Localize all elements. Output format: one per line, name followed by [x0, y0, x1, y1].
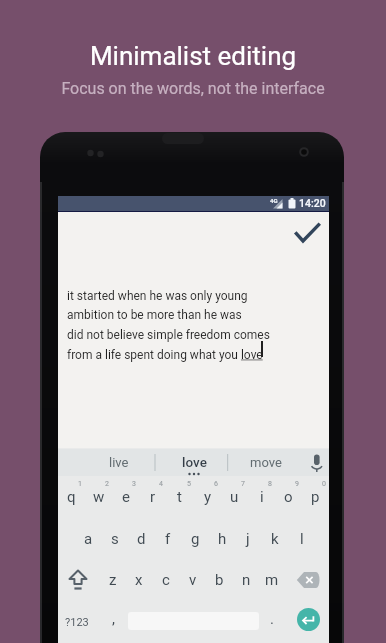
staticText: k [271, 530, 279, 548]
button[interactable]: n [233, 559, 259, 601]
staticText: d [137, 530, 146, 548]
button[interactable]: h [209, 518, 235, 560]
staticText: z [109, 571, 117, 589]
staticText: v [189, 571, 197, 589]
staticText: e [122, 488, 130, 506]
staticText: 6 [214, 480, 218, 488]
staticText: 1 [78, 480, 82, 488]
staticText: . [270, 610, 274, 628]
staticText: l [300, 530, 304, 548]
button[interactable]: j [235, 518, 261, 560]
button[interactable]: c [153, 559, 179, 601]
button[interactable]: z [100, 559, 126, 601]
staticText: 4G [270, 197, 278, 204]
staticText: q [67, 488, 76, 506]
button[interactable]: u [221, 476, 248, 518]
staticText: ?123 [65, 616, 89, 629]
button[interactable]: love [179, 451, 209, 473]
staticText: 7 [241, 480, 245, 488]
button[interactable]: m [259, 559, 285, 601]
staticText: r [150, 488, 156, 506]
button[interactable]: i [248, 476, 275, 518]
button[interactable]: d [128, 518, 154, 560]
staticText: 5 [187, 480, 191, 488]
button[interactable] [297, 608, 320, 631]
button[interactable]: q [58, 476, 85, 518]
button[interactable]: a [75, 518, 101, 560]
staticText: 8 [268, 480, 272, 488]
button[interactable]: e [112, 476, 139, 518]
staticText: 9 [295, 480, 299, 488]
button[interactable]: k [262, 518, 288, 560]
staticText: it started when he was only young ambiti… [67, 289, 270, 362]
staticText: b [215, 571, 224, 589]
button[interactable] [67, 569, 89, 591]
button[interactable]: ?123 [60, 611, 94, 633]
staticText: 3 [132, 480, 136, 488]
staticText: t [177, 488, 182, 506]
staticText: love [182, 454, 207, 470]
staticText: Minimalist editing [0, 41, 386, 71]
button[interactable]: f [155, 518, 181, 560]
button[interactable]: b [206, 559, 232, 601]
staticText: a [84, 530, 93, 548]
staticText: 4 [159, 480, 163, 488]
staticText: j [246, 530, 250, 548]
button[interactable]: s [102, 518, 128, 560]
staticText: u [230, 488, 239, 506]
button[interactable]: x [126, 559, 152, 601]
staticText: m [265, 571, 279, 589]
staticText: g [191, 530, 200, 548]
staticText: 2 [105, 480, 109, 488]
button[interactable]: v [180, 559, 206, 601]
button[interactable] [296, 571, 320, 589]
staticText: y [204, 488, 212, 506]
button[interactable]: t [166, 476, 193, 518]
button[interactable]: live [104, 451, 134, 473]
staticText: p [311, 488, 320, 506]
staticText: 0 [322, 480, 326, 488]
staticText: n [242, 571, 251, 589]
staticText: 14:20 [299, 197, 326, 209]
staticText: move [250, 455, 282, 470]
button[interactable]: , [103, 608, 123, 630]
staticText: live [109, 455, 129, 470]
button[interactable]: . [262, 608, 282, 630]
staticText: f [165, 530, 171, 548]
staticText: w [93, 488, 105, 506]
staticText: x [135, 571, 143, 589]
button[interactable]: p [302, 476, 329, 518]
staticText: h [218, 530, 227, 548]
button[interactable] [292, 220, 324, 244]
button[interactable]: o [275, 476, 302, 518]
button[interactable]: g [182, 518, 208, 560]
button[interactable]: r [139, 476, 166, 518]
button[interactable]: l [289, 518, 315, 560]
button[interactable]: move [244, 451, 288, 473]
staticText: Focus on the words, not the interface [0, 79, 386, 98]
button[interactable]: y [194, 476, 221, 518]
staticText: o [284, 488, 293, 506]
staticText: , [112, 610, 115, 628]
button[interactable]: w [85, 476, 112, 518]
staticText: i [260, 488, 264, 506]
staticText: c [162, 571, 170, 589]
staticText: s [111, 530, 119, 548]
